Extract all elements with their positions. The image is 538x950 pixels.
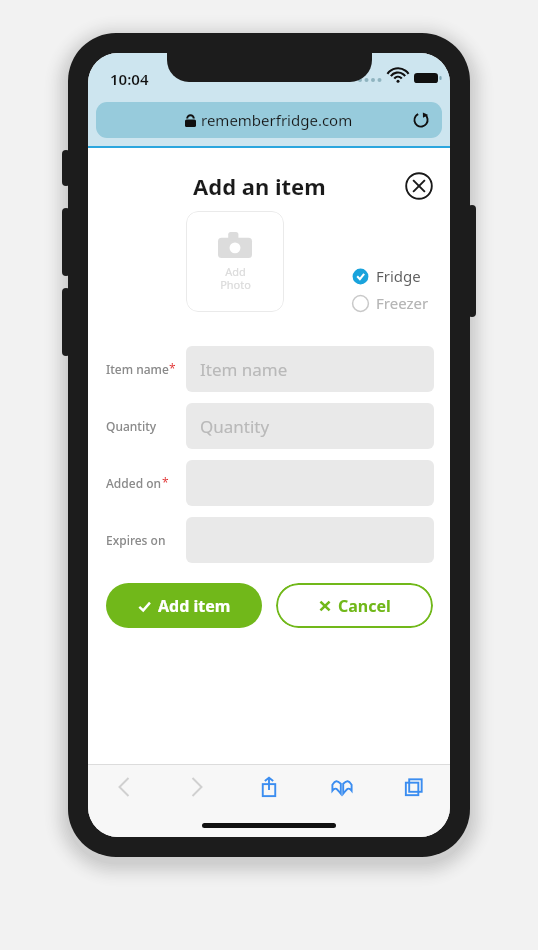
staticText: Fridge bbox=[376, 266, 421, 286]
staticText: Add an item bbox=[193, 171, 326, 201]
staticText: Item name bbox=[200, 358, 288, 381]
button[interactable]: Forward bbox=[175, 765, 219, 809]
button[interactable]: Item name bbox=[186, 346, 434, 392]
button[interactable]: Freezer bbox=[352, 293, 429, 313]
button[interactable]: Add item bbox=[106, 583, 262, 628]
button[interactable]: Close bbox=[404, 171, 434, 201]
button[interactable]: Add Photo bbox=[186, 211, 284, 312]
button[interactable]: Quantity bbox=[186, 403, 434, 449]
button[interactable]: Back bbox=[102, 765, 146, 809]
staticText: * bbox=[162, 474, 169, 490]
staticText: 10:04 bbox=[110, 69, 149, 89]
staticText: Quantity bbox=[200, 415, 270, 438]
staticText: Quantity bbox=[106, 418, 157, 434]
staticText: Item name bbox=[106, 361, 169, 377]
staticText: rememberfridge.com bbox=[201, 110, 353, 130]
button[interactable]: Bookmarks bbox=[320, 765, 364, 809]
button[interactable]: rememberfridge.com bbox=[96, 102, 442, 138]
button[interactable]: Fridge bbox=[352, 266, 421, 286]
button[interactable]: Cancel bbox=[276, 583, 433, 628]
staticText: Added on bbox=[106, 475, 162, 491]
staticText: Cancel bbox=[338, 595, 391, 617]
staticText: Add Photo bbox=[220, 264, 251, 292]
staticText: Freezer bbox=[376, 293, 429, 313]
button[interactable]: Tabs bbox=[392, 765, 436, 809]
staticText: Expires on bbox=[106, 532, 166, 548]
button[interactable]: Reload bbox=[410, 109, 432, 131]
staticText: * bbox=[169, 360, 176, 376]
button[interactable]: Share bbox=[247, 765, 291, 809]
staticText: Add item bbox=[158, 595, 231, 617]
